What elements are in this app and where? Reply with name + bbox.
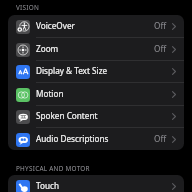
staticText: Touch [36, 180, 59, 191]
staticText: VoiceOver [36, 20, 75, 31]
button[interactable]: Touch [8, 175, 184, 192]
button[interactable]: Audio Descriptions [8, 128, 184, 150]
staticText: Zoom [36, 43, 59, 54]
staticText: Off [154, 133, 167, 144]
staticText: Off [154, 43, 167, 54]
button[interactable]: Zoom [8, 38, 184, 61]
staticText: Spoken Content [36, 110, 98, 121]
button[interactable]: Display & Text Size [8, 60, 184, 83]
staticText: PHYSICAL AND MOTOR [16, 164, 90, 173]
staticText: Off [154, 20, 167, 31]
staticText: Audio Descriptions [36, 133, 109, 144]
button[interactable]: Motion [8, 83, 184, 106]
button[interactable]: Spoken Content [8, 105, 184, 128]
staticText: VISION [16, 3, 40, 12]
staticText: Motion [36, 88, 64, 99]
staticText: Display & Text Size [36, 65, 108, 76]
button[interactable]: VoiceOver [8, 15, 184, 38]
